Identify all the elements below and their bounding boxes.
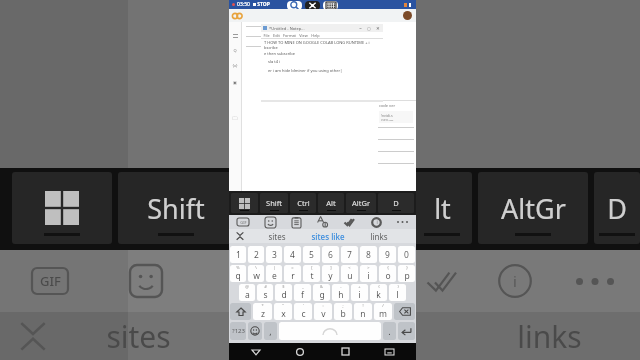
staticText: i bbox=[513, 271, 517, 291]
button[interactable]: sites bbox=[251, 229, 302, 243]
button[interactable]: ; bbox=[334, 303, 352, 320]
button[interactable]: Ctrl bbox=[290, 193, 316, 213]
button[interactable]: = bbox=[284, 265, 301, 282]
staticText: Format bbox=[283, 33, 296, 38]
staticText: i bbox=[376, 219, 378, 226]
button[interactable]: | bbox=[266, 265, 282, 282]
staticText: sites like bbox=[311, 231, 345, 242]
button[interactable]: ) bbox=[389, 284, 406, 301]
button[interactable]: Comma bbox=[264, 322, 277, 340]
button[interactable]: ( bbox=[370, 284, 387, 301]
button[interactable]: [ bbox=[303, 265, 320, 282]
button[interactable]: 0 bbox=[398, 246, 415, 263]
button[interactable]: Translate bbox=[313, 215, 333, 229]
staticText: & bbox=[320, 284, 323, 289]
button[interactable]: 2 bbox=[248, 246, 264, 263]
staticText: 5 bbox=[309, 249, 314, 261]
staticText: i bbox=[367, 270, 370, 282]
button[interactable]: Emoji bbox=[248, 322, 262, 340]
staticText: lt bbox=[434, 190, 451, 227]
button[interactable]: Period bbox=[383, 322, 396, 340]
staticText: 7 bbox=[347, 249, 352, 261]
button[interactable]: Numbers bbox=[230, 322, 246, 340]
button[interactable]: 5 bbox=[303, 246, 320, 263]
button[interactable]: # bbox=[257, 284, 273, 301]
button[interactable]: Clipboard bbox=[286, 215, 306, 229]
staticText: Help bbox=[311, 33, 320, 38]
button[interactable]: Tool bbox=[287, 1, 302, 10]
staticText: o bbox=[385, 270, 391, 282]
staticText: ?123 bbox=[232, 327, 245, 335]
button[interactable]: 8 bbox=[360, 246, 377, 263]
staticText: . bbox=[388, 325, 391, 337]
button[interactable]: } bbox=[398, 265, 415, 282]
staticText: ( bbox=[378, 284, 380, 289]
staticText: k bbox=[376, 289, 381, 301]
button[interactable]: + bbox=[351, 284, 368, 301]
staticText: Shift bbox=[147, 190, 205, 227]
button[interactable]: @ bbox=[239, 284, 255, 301]
button[interactable]: Home bbox=[283, 343, 317, 360]
staticText: File bbox=[263, 33, 270, 38]
button[interactable]: 3 bbox=[266, 246, 282, 263]
staticText: h bbox=[338, 289, 344, 301]
button[interactable]: Shift bbox=[230, 303, 251, 320]
button[interactable]: * bbox=[253, 303, 272, 320]
staticText: 2 bbox=[254, 249, 259, 261]
button[interactable]: % bbox=[230, 265, 246, 282]
staticText: | bbox=[273, 265, 276, 270]
button[interactable]: ] bbox=[322, 265, 339, 282]
button[interactable]: Alt bbox=[318, 193, 344, 213]
button[interactable]: Back bbox=[239, 343, 273, 360]
staticText: GPU:on bbox=[381, 118, 394, 121]
button[interactable]: _ bbox=[294, 284, 311, 301]
button[interactable]: ' bbox=[294, 303, 312, 320]
button[interactable]: " bbox=[274, 303, 292, 320]
button[interactable]: Enter bbox=[398, 322, 415, 340]
button[interactable]: 4 bbox=[284, 246, 301, 263]
staticText: a bbox=[245, 289, 250, 301]
button[interactable]: links bbox=[353, 229, 404, 243]
button[interactable]: Expand bbox=[229, 229, 251, 243]
staticText: links bbox=[370, 231, 388, 242]
button[interactable]: Info bbox=[366, 215, 386, 229]
button[interactable]: - bbox=[332, 284, 349, 301]
button[interactable]: Tool bbox=[323, 1, 338, 10]
button[interactable]: D bbox=[378, 193, 414, 213]
button[interactable]: Stickers bbox=[260, 215, 280, 229]
button[interactable]: Keyboard bbox=[372, 343, 406, 360]
staticText: l bbox=[396, 289, 399, 301]
button[interactable]: GIF keyboard bbox=[233, 215, 253, 229]
button[interactable]: AltGr bbox=[346, 193, 376, 213]
button[interactable] bbox=[231, 193, 258, 213]
button[interactable]: / bbox=[374, 303, 392, 320]
staticText: < bbox=[348, 265, 351, 270]
button[interactable]: Tool bbox=[305, 1, 320, 10]
staticText: D bbox=[607, 190, 627, 227]
button[interactable]: Backspace bbox=[394, 303, 415, 320]
button[interactable]: ! bbox=[354, 303, 372, 320]
button[interactable]: Shift bbox=[260, 193, 288, 213]
staticText: % bbox=[236, 265, 240, 270]
staticText: m bbox=[379, 308, 387, 320]
button[interactable]: $ bbox=[275, 284, 292, 301]
button[interactable]: \ bbox=[248, 265, 264, 282]
button[interactable]: Space bbox=[279, 322, 381, 340]
button[interactable]: 7 bbox=[341, 246, 358, 263]
button[interactable]: : bbox=[314, 303, 332, 320]
button[interactable]: > bbox=[360, 265, 377, 282]
button[interactable]: sites like bbox=[302, 229, 353, 243]
button[interactable]: & bbox=[313, 284, 330, 301]
button[interactable]: Grammar check bbox=[339, 215, 359, 229]
button[interactable]: < bbox=[341, 265, 358, 282]
button[interactable]: More options bbox=[392, 215, 412, 229]
button[interactable]: 9 bbox=[379, 246, 396, 263]
button[interactable]: 1 bbox=[230, 246, 246, 263]
button[interactable]: { bbox=[379, 265, 396, 282]
button[interactable]: 6 bbox=[322, 246, 339, 263]
staticText: links bbox=[517, 316, 582, 357]
button[interactable]: Recents bbox=[328, 343, 362, 360]
staticText: Shift bbox=[266, 198, 282, 208]
staticText: sla t4 i bbox=[268, 59, 281, 64]
staticText: : bbox=[322, 303, 324, 308]
